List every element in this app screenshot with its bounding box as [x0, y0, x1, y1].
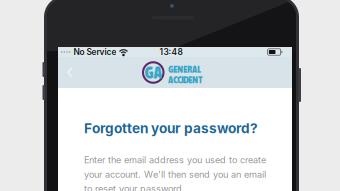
staticText: No Service — [73, 47, 116, 57]
staticText: ACCIDENT — [168, 74, 202, 85]
button[interactable]: Back — [59, 57, 80, 88]
staticText: Forgotten your password? — [84, 120, 258, 136]
staticText: Enter the email address you used to crea… — [84, 154, 266, 191]
staticText: GA — [145, 63, 162, 82]
staticText: 13:48 — [159, 47, 182, 57]
staticText: GENERAL — [168, 64, 201, 75]
